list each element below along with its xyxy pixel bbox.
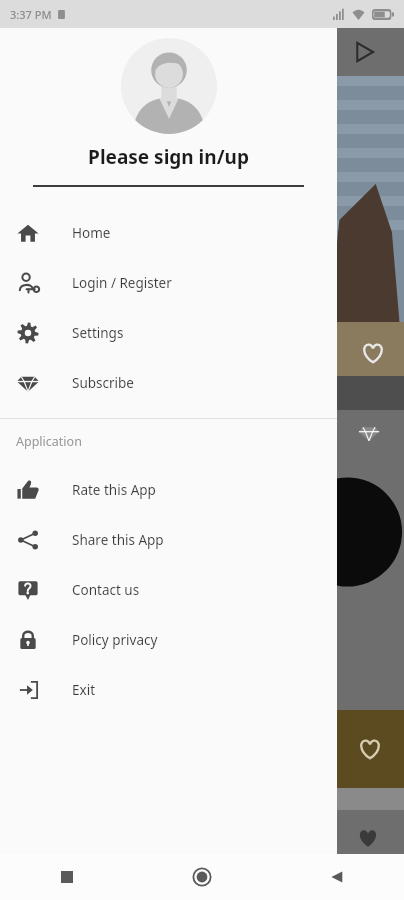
button[interactable]: Subscribe (0, 358, 337, 408)
button[interactable]: Back (317, 857, 357, 897)
staticText: Settings (72, 324, 124, 342)
staticText: Share this App (72, 531, 164, 549)
button[interactable]: Login / Register (0, 258, 337, 308)
button[interactable]: Play Store (352, 40, 376, 64)
button[interactable]: Recent apps (47, 857, 87, 897)
button[interactable]: Home (182, 857, 222, 897)
button[interactable]: Favourite (360, 340, 386, 366)
button[interactable]: Profile photo (121, 38, 217, 134)
staticText: Exit (72, 681, 96, 699)
button[interactable]: Policy privacy (0, 615, 337, 665)
button[interactable]: Exit (0, 665, 337, 715)
button[interactable]: Settings (0, 308, 337, 358)
button[interactable]: Favourite (356, 826, 380, 850)
staticText: Contact us (72, 581, 140, 599)
staticText: Subscribe (72, 374, 134, 392)
staticText: 3:37 PM (10, 7, 52, 22)
button[interactable]: Rate this App (0, 465, 337, 515)
button[interactable]: Contact us (0, 565, 337, 615)
staticText: Login / Register (72, 274, 172, 292)
staticText: Application (16, 433, 82, 450)
button[interactable]: Home (0, 208, 337, 258)
button[interactable]: Please sign in/up (0, 142, 337, 172)
button[interactable]: Favourite (357, 736, 383, 762)
button[interactable]: Share this App (0, 515, 337, 565)
staticText: Policy privacy (72, 631, 158, 649)
staticText: Home (72, 224, 111, 242)
staticText: Rate this App (72, 481, 156, 499)
